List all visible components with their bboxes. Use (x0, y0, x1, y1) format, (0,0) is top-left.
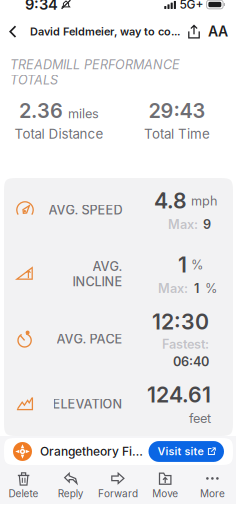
staticText: Visit site (157, 445, 203, 458)
staticText: Total Distance (14, 126, 103, 142)
staticText: 4.8 (154, 188, 187, 214)
staticText: % (205, 281, 217, 296)
staticText: Fastest: (162, 337, 209, 352)
button[interactable]: Text size (205, 18, 231, 44)
staticText: 1 (194, 281, 199, 296)
staticText: 29:43 (148, 99, 205, 123)
button[interactable]: Back (2, 18, 24, 44)
staticText: AA (208, 23, 228, 40)
staticText: 9 (203, 217, 211, 232)
button[interactable]: Move (142, 467, 189, 504)
staticText: Reply (58, 487, 84, 499)
staticText: % (191, 257, 203, 272)
staticText: 1 (178, 252, 187, 278)
staticText: Total Time (144, 126, 210, 142)
staticText: 5G+ (180, 0, 204, 12)
button[interactable]: More (189, 467, 236, 504)
staticText: AVG. PACE (56, 331, 122, 347)
button[interactable]: Forward (94, 467, 142, 504)
staticText: 12:30 (152, 309, 209, 335)
staticText: Forward (98, 487, 138, 499)
staticText: AVG. SPEED (48, 202, 122, 218)
button[interactable]: Orangetheory Fitness (0, 436, 236, 467)
staticText: 06:40 (173, 354, 209, 369)
button[interactable]: Share (183, 18, 205, 44)
staticText: 9:34 (25, 0, 58, 13)
staticText: Max: (168, 217, 198, 232)
staticText: More (200, 487, 225, 499)
staticText: 124.61 (147, 382, 211, 408)
staticText: miles (68, 106, 99, 121)
staticText: Max: (158, 281, 188, 296)
staticText: Delete (9, 487, 39, 499)
staticText: 2.36 (19, 99, 63, 123)
staticText: Move (152, 487, 178, 499)
staticText: feet (189, 411, 211, 426)
staticText: TREADMILL PERFORMANCE TOTALS (10, 57, 180, 88)
staticText: David Feldmeier, way to co... (30, 25, 180, 38)
button[interactable]: Reply (47, 467, 94, 504)
button[interactable]: Delete (0, 467, 47, 504)
staticText: Orangetheory Fitness (40, 444, 144, 459)
staticText: ELEVATION (52, 396, 122, 412)
staticText: AVG. INCLINE (72, 259, 122, 289)
staticText: mph (191, 193, 217, 208)
